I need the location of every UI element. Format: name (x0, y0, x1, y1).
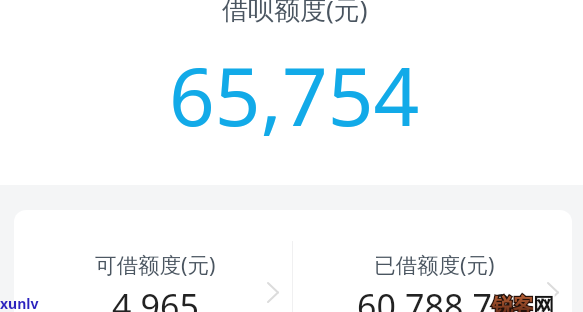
staticText: 4,965 (112, 283, 199, 312)
button[interactable]: 已借额度(元) (293, 210, 572, 312)
staticText: 可借额度(元) (95, 250, 216, 279)
staticText: 锐客 (492, 293, 534, 312)
staticText: 锐客 (492, 293, 534, 312)
button[interactable]: 可借额度(元) (14, 210, 292, 312)
other: Open 已借额度(元) details (547, 282, 559, 303)
staticText: 借呗额度(元) (222, 0, 368, 27)
staticText: 60,788.79 (357, 283, 512, 312)
staticText: 已借额度(元) (374, 250, 495, 279)
staticText: 网 (533, 293, 554, 312)
other: Open 可借额度(元) details (267, 282, 279, 303)
staticText: 网 (533, 293, 554, 312)
staticText: xunlv (0, 294, 39, 312)
staticText: 65,754 (169, 40, 420, 149)
